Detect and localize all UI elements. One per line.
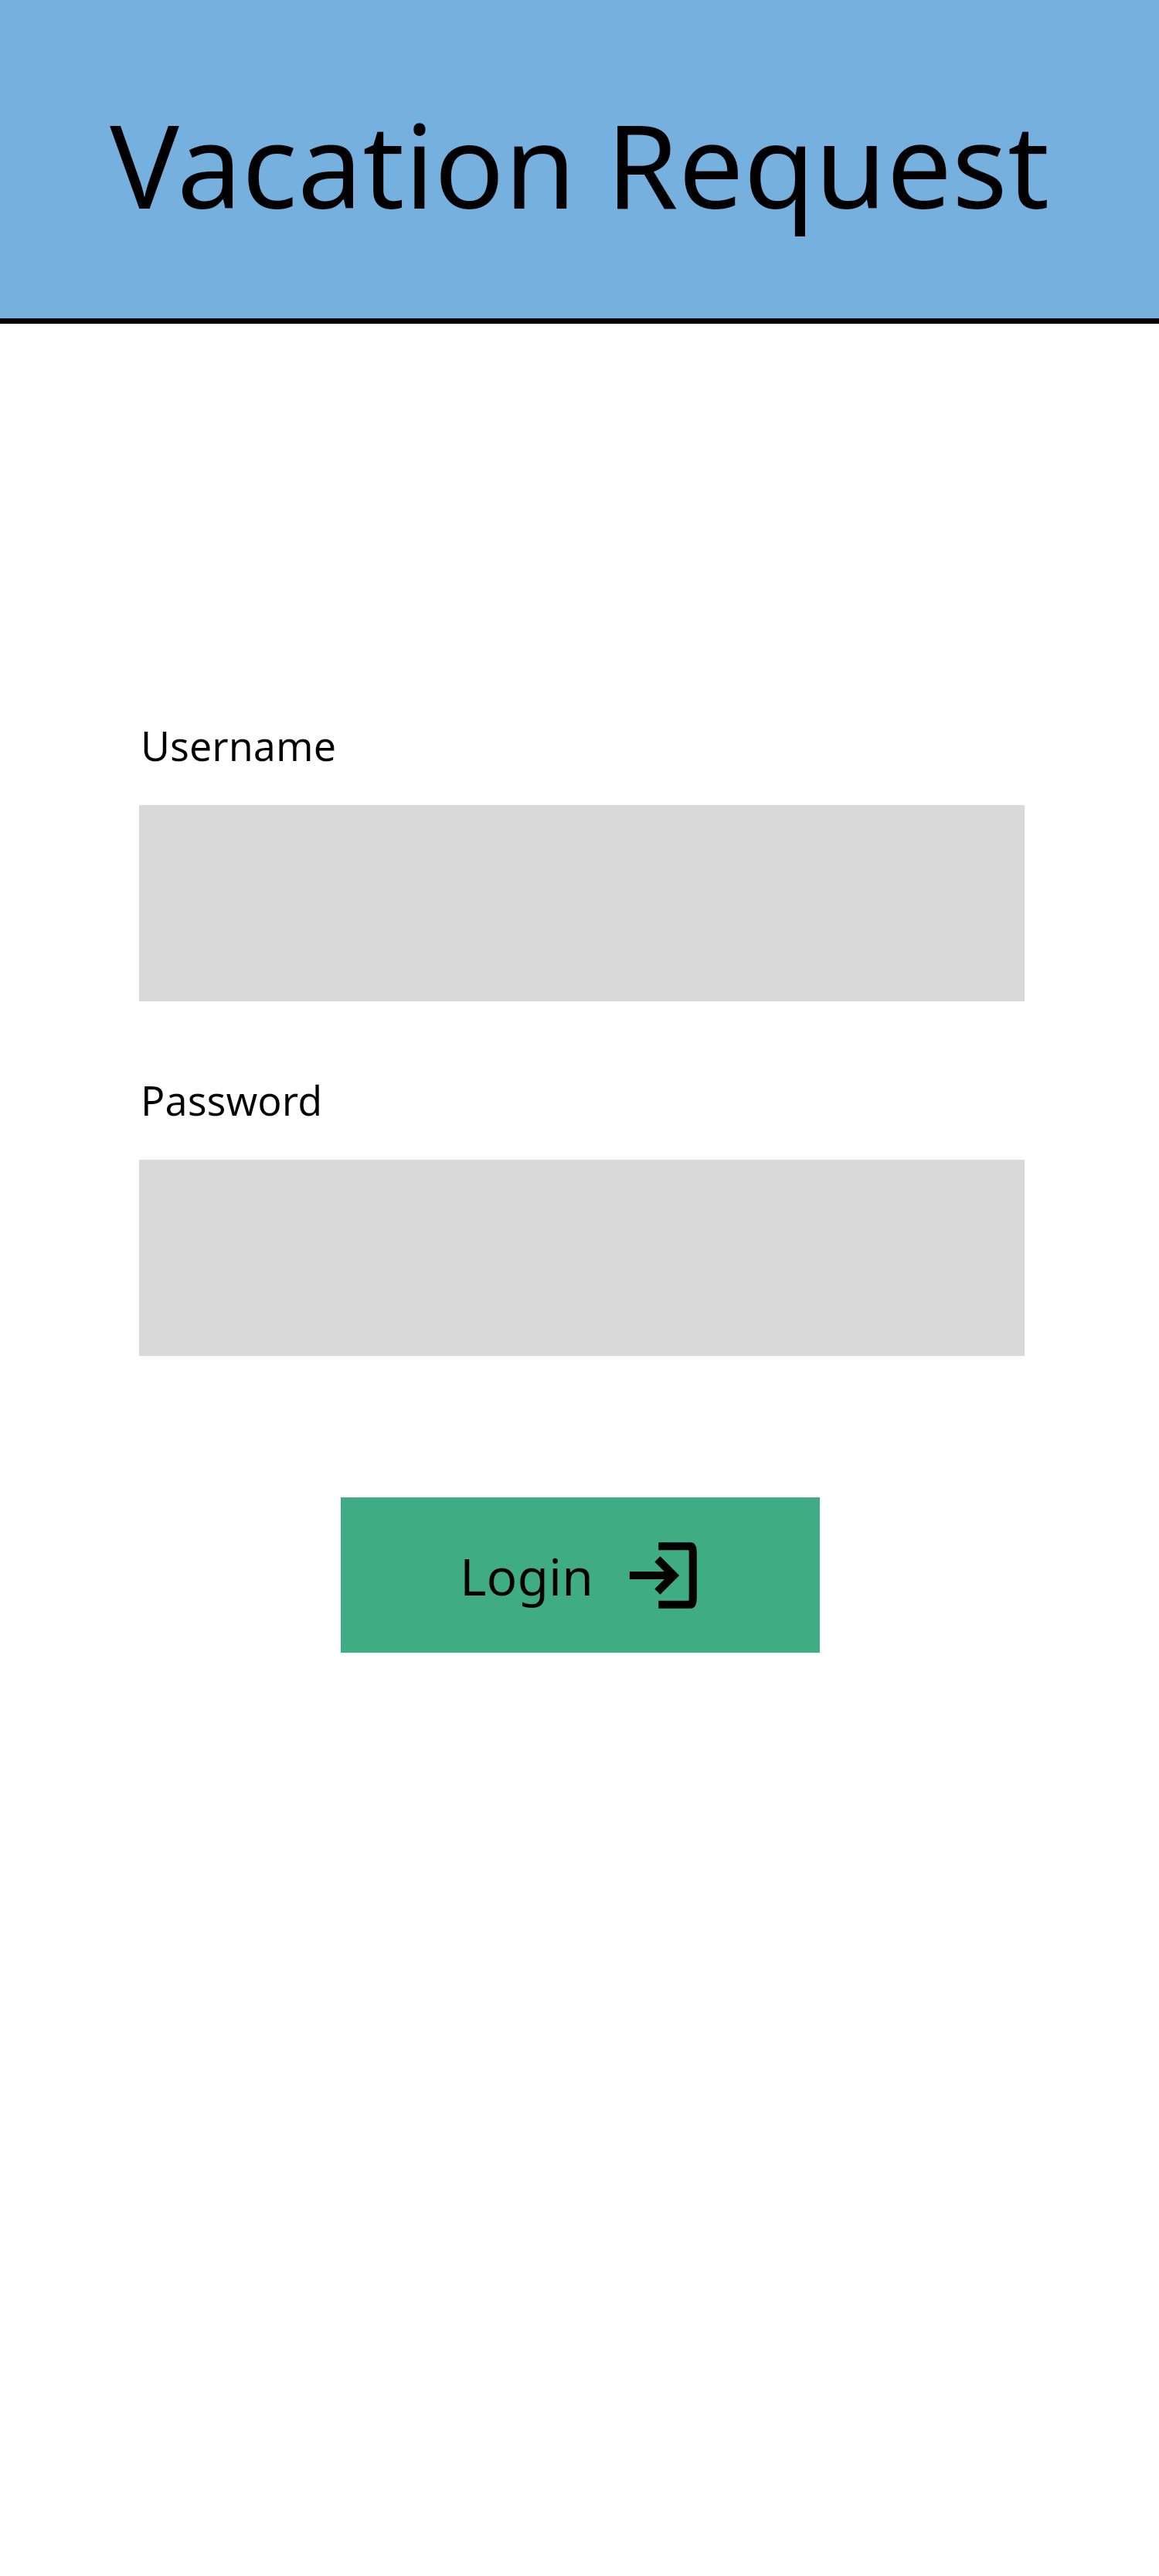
button[interactable]: Vacation Request bbox=[0, 0, 1159, 318]
staticText: Username bbox=[141, 718, 336, 773]
staticText: Password bbox=[141, 1072, 323, 1127]
staticText: Login bbox=[460, 1541, 593, 1610]
staticText: Vacation Request bbox=[0, 85, 1159, 243]
button[interactable]: Login bbox=[341, 1497, 820, 1653]
